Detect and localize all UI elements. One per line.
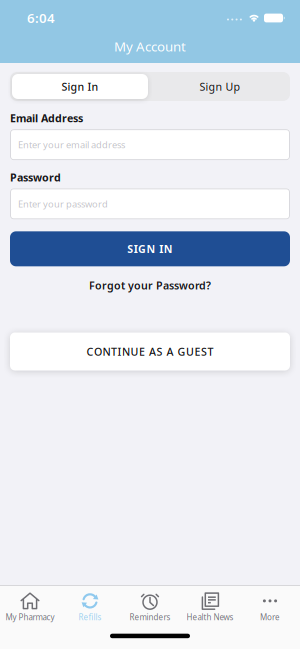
button[interactable]: SIGN IN	[10, 231, 290, 266]
staticText: Sign In	[61, 79, 98, 94]
staticText: Refills	[78, 612, 101, 622]
staticText: 6:04	[27, 9, 55, 27]
button[interactable]: Sign In	[12, 74, 148, 99]
staticText: Enter your password	[18, 198, 108, 210]
staticText: My Pharmacy	[5, 612, 54, 622]
staticText: SIGN IN	[127, 242, 173, 256]
staticText: CONTINUE AS A GUEST	[86, 344, 213, 359]
button[interactable]: Sign Up	[152, 74, 288, 99]
staticText: Reminders	[129, 612, 170, 622]
staticText: My Account	[114, 37, 186, 55]
button[interactable]: Health News	[180, 591, 240, 623]
staticText: Forgot your Password?	[89, 278, 211, 292]
button[interactable]: Refills	[60, 591, 120, 623]
staticText: Health News	[186, 612, 233, 622]
button[interactable]: Forgot your Password?	[89, 266, 211, 292]
button[interactable]: Reminders	[120, 591, 180, 623]
button[interactable]: More	[240, 591, 300, 623]
staticText: Password	[10, 170, 61, 184]
button[interactable]: My Pharmacy	[0, 591, 60, 623]
staticText: Enter your email address	[18, 138, 125, 151]
button[interactable]: CONTINUE AS A GUEST	[10, 332, 290, 370]
staticText: Sign Up	[199, 79, 240, 94]
staticText: Email Address	[10, 111, 83, 125]
staticText: More	[260, 612, 280, 622]
